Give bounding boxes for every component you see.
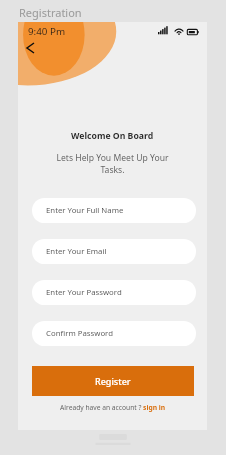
staticText: Already have an account ? sign in xyxy=(60,403,166,412)
staticText: Enter Your Full Name xyxy=(46,205,124,216)
staticText: Lets Help You Meet Up Your Tasks. xyxy=(56,152,169,176)
staticText: Confirm Password xyxy=(46,328,113,339)
staticText: 9:40 Pm xyxy=(28,25,66,38)
staticText: Enter Your Email xyxy=(46,246,107,257)
button[interactable]: Register xyxy=(32,366,194,396)
button[interactable]: Back xyxy=(22,38,39,58)
button[interactable]: Enter Your Email xyxy=(32,239,196,264)
button[interactable]: Confirm Password xyxy=(32,321,196,346)
staticText: Registration xyxy=(19,5,82,20)
staticText: Enter Your Password xyxy=(46,287,122,298)
staticText: Welcome On Board xyxy=(71,130,154,142)
button[interactable]: Enter Your Password xyxy=(32,280,196,305)
button[interactable]: Enter Your Full Name xyxy=(32,198,196,223)
button[interactable]: Already have an account ? sign in xyxy=(58,402,168,413)
staticText: Register xyxy=(95,375,131,387)
